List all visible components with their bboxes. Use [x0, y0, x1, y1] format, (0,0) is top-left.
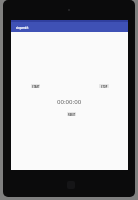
staticText: STOP: [101, 85, 108, 88]
button[interactable]: stopwatch: [11, 22, 128, 32]
staticText: 00:00:00: [57, 97, 82, 105]
button[interactable]: RESET: [67, 112, 76, 116]
staticText: START: [32, 85, 40, 88]
button[interactable]: START: [31, 84, 40, 88]
staticText: RESET: [68, 113, 76, 116]
button[interactable]: STOP: [99, 84, 109, 88]
staticText: stopwatch: [16, 26, 29, 29]
